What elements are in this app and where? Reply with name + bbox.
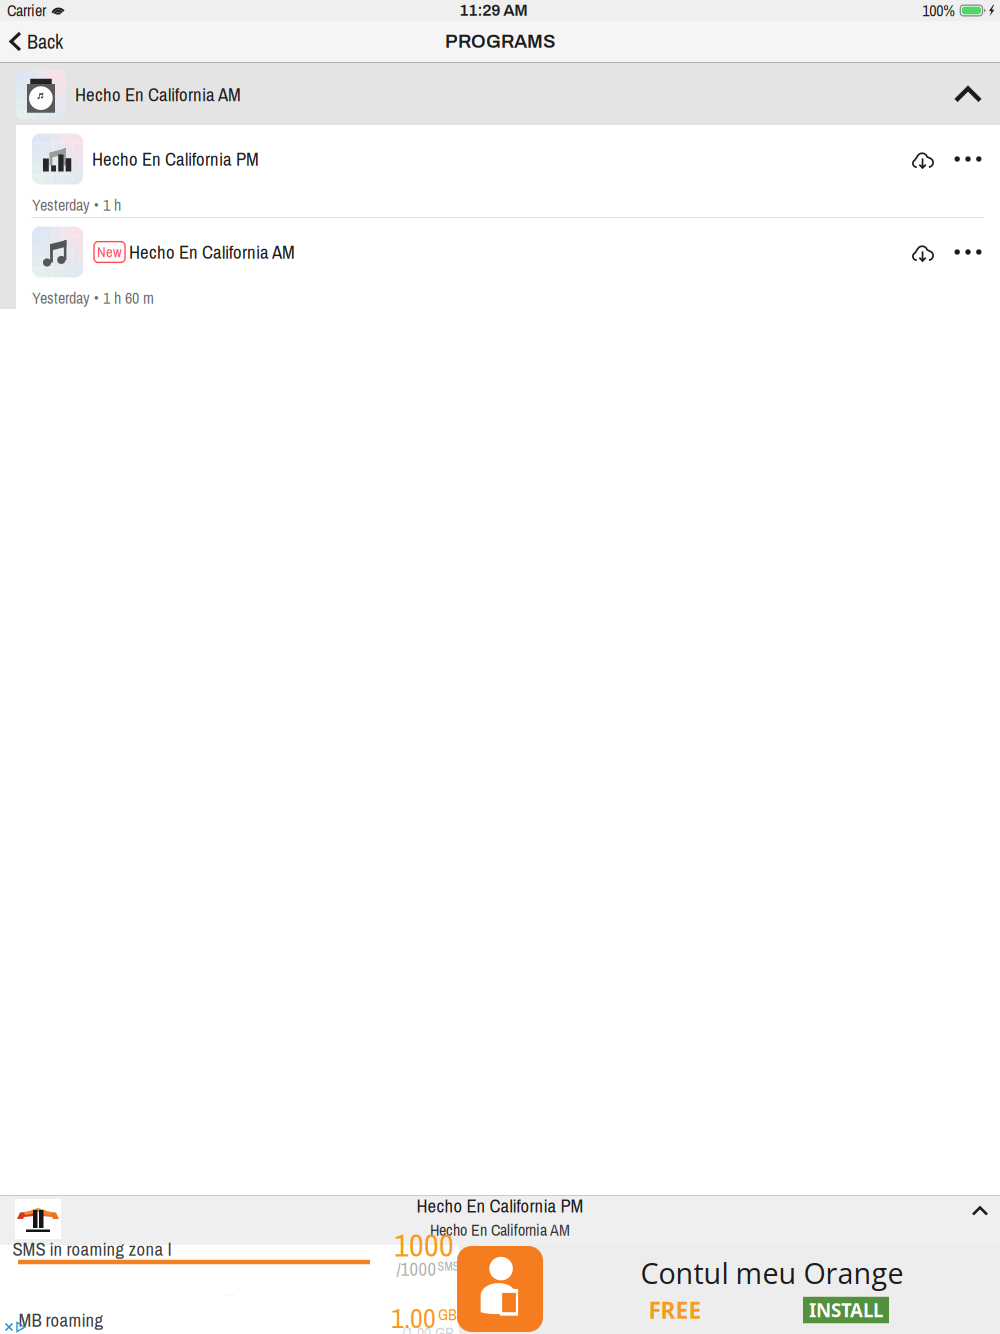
staticText: New	[97, 242, 122, 262]
staticText: Yesterday • 1 h 60 m	[32, 287, 154, 309]
staticText: /1.00 GB	[402, 1322, 454, 1334]
button[interactable]: Download episode	[899, 231, 947, 273]
staticText: Hecho En California AM	[430, 1219, 570, 1241]
staticText: MB roaming	[18, 1307, 103, 1332]
staticText: 100%	[922, 0, 955, 21]
button[interactable]: Back	[0, 21, 77, 61]
staticText: SMS	[437, 1258, 459, 1275]
staticText: INSTALL	[809, 1297, 883, 1323]
button[interactable]: SMS in roaming zona I	[0, 1245, 1000, 1334]
button[interactable]: More options	[947, 231, 989, 273]
button[interactable]: More options	[947, 138, 989, 180]
staticText: Hecho En California AM	[75, 82, 241, 107]
staticText: /1000	[396, 1256, 436, 1281]
button[interactable]: New	[16, 218, 1000, 310]
staticText: Carrier	[7, 0, 46, 21]
button[interactable]: Expand player	[963, 1198, 997, 1224]
staticText: 11:29 AM	[459, 2, 528, 19]
staticText: Hecho En California PM	[416, 1193, 583, 1218]
button[interactable]: Hecho En California PM	[0, 1196, 1000, 1245]
staticText: PROGRAMS	[445, 31, 555, 52]
staticText: Contul meu Orange	[640, 1253, 903, 1292]
staticText: 1.00	[391, 1299, 436, 1334]
staticText: Yesterday • 1 h	[32, 194, 121, 216]
staticText: Hecho En California AM	[129, 239, 295, 264]
staticText: 1000	[394, 1223, 454, 1266]
staticText: Hecho En California PM	[92, 146, 259, 171]
button[interactable]: Download episode	[899, 138, 947, 180]
staticText: Back	[27, 28, 63, 55]
button[interactable]: Hecho En California AM	[0, 63, 1000, 126]
button[interactable]: Hecho En California PM	[16, 125, 1000, 217]
staticText: GB	[438, 1304, 457, 1325]
staticText: FREE	[648, 1295, 701, 1325]
staticText: SMS in roaming zona I	[12, 1236, 171, 1261]
